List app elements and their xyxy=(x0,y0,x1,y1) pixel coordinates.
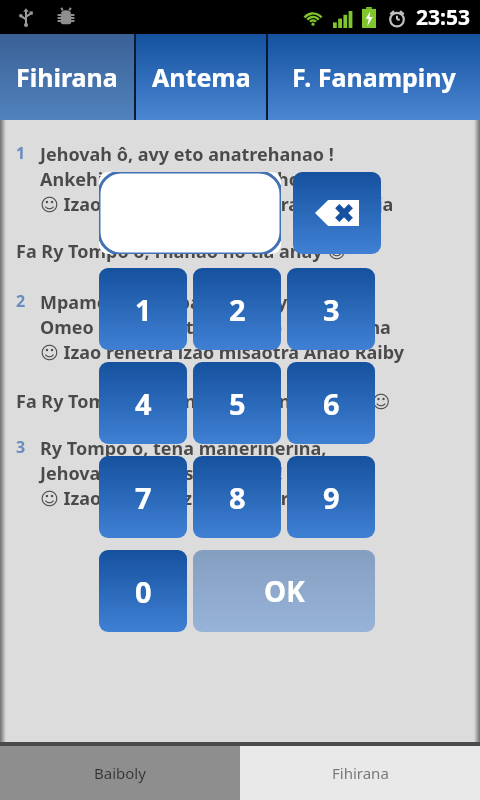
staticText: 1 xyxy=(135,290,152,329)
button[interactable]: Fihirana xyxy=(240,746,480,800)
staticText: 5 xyxy=(229,384,246,423)
staticText: ☺ Izao rehetra izao misaotra Anao Raiby xyxy=(40,340,404,365)
staticText: OK xyxy=(264,572,305,610)
button[interactable] xyxy=(99,172,281,254)
staticText: 4 xyxy=(135,384,152,423)
button[interactable]: 9 xyxy=(287,456,375,538)
button[interactable]: 8 xyxy=(193,456,281,538)
staticText: Amen. xyxy=(16,515,470,531)
button[interactable]: 0 xyxy=(99,550,187,632)
staticText: 9 xyxy=(323,478,340,517)
staticText: F. Fanampiny xyxy=(292,60,456,94)
staticText: Mpamonjy ô, mba henoy ny hataka xyxy=(40,290,356,315)
staticText: Ankehitriny izao no hihira ho Anao ! xyxy=(40,167,361,192)
button[interactable]: 6 xyxy=(287,362,375,444)
button[interactable]: F. Fanampiny xyxy=(268,34,480,120)
staticText: 7 xyxy=(135,478,152,517)
button[interactable]: Backspace xyxy=(293,172,381,254)
staticText: Fa Ry Tompo ô, Hianao no tia anay ☺ xyxy=(16,239,347,264)
staticText: 0 xyxy=(135,572,152,611)
button[interactable]: 3 xyxy=(287,268,375,350)
button[interactable]: Fihirana xyxy=(0,34,134,120)
button[interactable]: Baiboly xyxy=(0,746,240,800)
button[interactable]: 1 xyxy=(99,268,187,350)
staticText: 2 xyxy=(229,290,246,329)
button[interactable]: 4 xyxy=(99,362,187,444)
staticText: ☺ Izao rehetra izao misaotra xyxy=(40,486,300,511)
staticText: Fihirana xyxy=(16,60,118,94)
button[interactable]: 2 xyxy=(193,268,281,350)
staticText: Antema xyxy=(152,60,251,94)
staticText: Fa Ry Tompo ô, Hianao no mandrakizay ☺ xyxy=(16,389,391,414)
button[interactable]: OK xyxy=(193,550,375,632)
staticText: 3 xyxy=(323,290,340,329)
staticText: Jehovah be fitia sy marina ! xyxy=(40,461,283,486)
staticText: Omeo anay ny fitahiana ho anay sarina xyxy=(40,315,391,340)
staticText: ☺ Izao rehetra izao misaotra Anao Raja xyxy=(40,192,394,217)
button[interactable]: Antema xyxy=(136,34,266,120)
staticText: Ry Tompo ô, tena manerinerina, xyxy=(40,436,327,461)
button[interactable]: 7 xyxy=(99,456,187,538)
staticText: 6 xyxy=(323,384,340,423)
staticText: 23:53 xyxy=(416,3,470,32)
staticText: 8 xyxy=(229,478,246,517)
staticText: 3 xyxy=(16,436,40,458)
staticText: Jehovah ô, avy eto anatrehanao ! xyxy=(40,142,334,167)
button[interactable]: 5 xyxy=(193,362,281,444)
staticText: 1 xyxy=(16,142,40,164)
staticText: Baiboly xyxy=(94,763,146,783)
staticText: 2 xyxy=(16,290,40,312)
staticText: Fihirana xyxy=(332,763,389,783)
